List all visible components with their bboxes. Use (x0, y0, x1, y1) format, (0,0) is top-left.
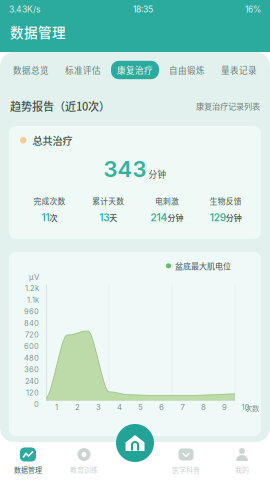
button[interactable]: 康复治疗 (111, 61, 159, 79)
staticText: 480 (24, 353, 39, 362)
staticText: 标准评估 (65, 64, 101, 76)
staticText: 0 (34, 400, 39, 409)
staticText: 总共治疗 (32, 133, 72, 148)
button[interactable]: 自由锻炼 (163, 61, 211, 79)
staticText: 240 (25, 377, 39, 386)
staticText: 1.1k (27, 295, 39, 304)
staticText: 数据管理 (14, 464, 42, 474)
button[interactable]: 首页 (116, 424, 154, 462)
staticText: µV (29, 272, 39, 282)
staticText: 13 (99, 211, 109, 224)
button[interactable]: 康复治疗记录列表 (196, 100, 260, 112)
staticText: 3.43K/s (9, 4, 41, 15)
staticText: 16% (245, 4, 261, 15)
button[interactable]: 量表记录 (215, 61, 263, 79)
staticText: 分钟 (226, 212, 242, 223)
staticText: 1.2k (25, 284, 39, 293)
staticText: 840 (24, 319, 39, 328)
staticText: 量表记录 (221, 64, 257, 76)
staticText: 10 (241, 402, 249, 412)
staticText: 2 (75, 402, 80, 412)
button[interactable]: 教育训练 (56, 442, 112, 480)
staticText: 600 (24, 342, 39, 351)
button[interactable]: 数据管理 (0, 442, 56, 480)
staticText: 720 (25, 330, 39, 339)
staticText: 生物反馈 (210, 195, 242, 206)
staticText: 4 (117, 402, 122, 412)
button[interactable]: 标准评估 (59, 61, 107, 79)
staticText: 数据管理 (10, 22, 66, 42)
staticText: 分钟 (167, 212, 183, 223)
staticText: 960 (24, 307, 39, 316)
staticText: 电刺激 (155, 195, 179, 206)
staticText: 120 (26, 388, 39, 397)
staticText: 1 (55, 402, 58, 412)
button[interactable]: 医学科普 (158, 442, 214, 480)
staticText: 天 (109, 212, 117, 223)
staticText: 7 (180, 402, 184, 412)
staticText: 我的 (235, 464, 249, 474)
staticText: 趋势报告（近10次） (10, 98, 110, 114)
button[interactable]: 数据总览 (7, 61, 55, 79)
staticText: 3 (96, 402, 101, 412)
staticText: 康复治疗 (117, 64, 153, 76)
staticText: 8 (201, 402, 206, 412)
staticText: 累计天数 (92, 195, 124, 206)
staticText: 次 (49, 212, 57, 223)
staticText: 次数 (245, 403, 259, 413)
staticText: 教育训练 (70, 464, 98, 474)
staticText: 360 (24, 365, 39, 374)
staticText: 医学科普 (172, 464, 200, 474)
staticText: 9 (222, 402, 227, 412)
staticText: 自由锻炼 (169, 64, 205, 76)
staticText: 分钟 (148, 168, 166, 180)
staticText: 5 (138, 402, 143, 412)
staticText: 数据总览 (13, 64, 49, 76)
staticText: 11 (41, 211, 49, 224)
staticText: 完成次数 (33, 195, 65, 206)
button[interactable]: 我的 (214, 442, 270, 480)
staticText: 18:35 (133, 4, 153, 15)
staticText: 343 (103, 156, 146, 182)
staticText: 6 (159, 402, 164, 412)
staticText: 214 (150, 211, 167, 224)
staticText: 129 (210, 211, 226, 224)
staticText: 康复治疗记录列表 (196, 100, 260, 112)
staticText: 盆底最大肌电位 (175, 260, 231, 272)
